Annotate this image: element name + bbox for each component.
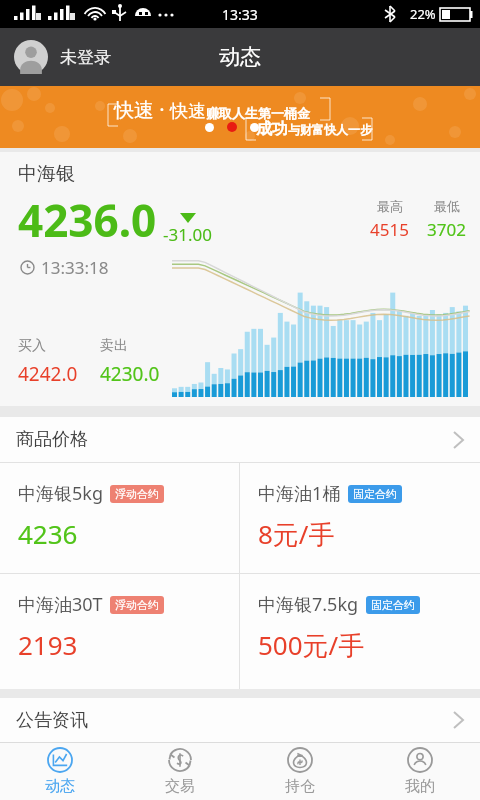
other: 交易 xyxy=(167,747,193,773)
button[interactable]: 中海银 xyxy=(0,152,480,406)
staticText: 4515 xyxy=(370,218,409,241)
staticText: 2193 xyxy=(18,627,78,662)
staticText: 22% xyxy=(410,5,436,23)
button[interactable]: 交易 xyxy=(120,743,240,800)
staticText: 未登录 xyxy=(60,47,111,68)
button[interactable]: 持仓 xyxy=(240,743,360,800)
staticText: 浮动合约 xyxy=(115,598,159,612)
other: 动态 xyxy=(47,747,73,773)
staticText: 快速 xyxy=(170,100,206,123)
staticText: 我的 xyxy=(405,777,435,796)
staticText: 13:33:18 xyxy=(41,256,109,279)
staticText: 500元/手 xyxy=(258,627,365,663)
staticText: 动态 xyxy=(219,44,261,70)
staticText: 固定合约 xyxy=(371,598,415,612)
staticText: 与财富快人一步 xyxy=(288,122,372,137)
button[interactable]: 我的 xyxy=(360,743,480,800)
staticText: 最高 xyxy=(377,198,403,214)
staticText: 卖出 xyxy=(100,337,128,355)
staticText: 固定合约 xyxy=(353,487,397,501)
staticText: 商品价格 xyxy=(16,428,88,451)
staticText: 中海银 xyxy=(18,162,75,186)
staticText: 中海银5kg xyxy=(18,481,103,506)
staticText: 买入 xyxy=(18,337,46,355)
staticText: 持仓 xyxy=(285,777,315,796)
staticText: 4236 xyxy=(18,516,78,551)
button[interactable]: 中海银5kg xyxy=(0,463,239,573)
button[interactable]: 中海油30T xyxy=(0,574,239,689)
button[interactable]: 商品价格 xyxy=(0,417,480,462)
staticText: 赚取人生第一桶金 xyxy=(206,105,310,121)
staticText: 4230.0 xyxy=(100,361,160,387)
staticText: 4236.0 xyxy=(18,190,157,250)
button[interactable]: 动态 xyxy=(0,743,120,800)
staticText: 公告资讯 xyxy=(16,709,88,732)
staticText: 8元/手 xyxy=(258,516,335,552)
staticText: 最低 xyxy=(434,198,460,214)
staticText: 13:33 xyxy=(222,5,258,24)
button[interactable]: 公告资讯 xyxy=(0,698,480,742)
staticText: · xyxy=(154,96,170,123)
staticText: 中海银7.5kg xyxy=(258,592,359,617)
button[interactable]: 中海油1桶 xyxy=(240,463,480,573)
staticText: 动态 xyxy=(45,777,75,796)
staticText: 交易 xyxy=(165,777,195,796)
staticText: 3702 xyxy=(427,218,466,241)
button[interactable]: 中海银7.5kg xyxy=(240,574,480,689)
other: 我的 xyxy=(407,747,433,773)
staticText: 中海油30T xyxy=(18,592,103,617)
staticText: 快速 xyxy=(114,98,154,123)
staticText: -31.00 xyxy=(163,223,212,246)
staticText: 浮动合约 xyxy=(115,487,159,501)
staticText: 中海油1桶 xyxy=(258,481,341,506)
button[interactable]: 未登录 xyxy=(14,40,111,74)
staticText: 4242.0 xyxy=(18,361,78,387)
staticText: 成功 xyxy=(256,119,288,139)
other: 持仓 xyxy=(287,747,313,773)
